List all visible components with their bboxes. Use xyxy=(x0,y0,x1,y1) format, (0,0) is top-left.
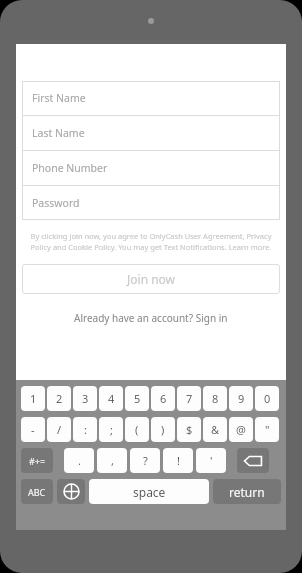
staticText: ; xyxy=(110,422,113,437)
staticText: $ xyxy=(186,422,193,437)
button[interactable]: 1 xyxy=(21,386,45,411)
staticText: First Name xyxy=(32,91,86,105)
button[interactable]: Change language xyxy=(57,479,85,504)
staticText: & xyxy=(211,422,220,437)
button[interactable]: & xyxy=(203,417,227,442)
button[interactable]: return xyxy=(213,479,281,504)
staticText: ! xyxy=(177,453,180,468)
button[interactable]: 5 xyxy=(125,386,149,411)
button[interactable]: - xyxy=(21,417,45,442)
staticText: Join now xyxy=(127,271,176,287)
staticText: ( xyxy=(135,422,139,437)
staticText: space xyxy=(133,484,166,500)
staticText: Phone Number xyxy=(32,161,108,175)
button[interactable]: 4 xyxy=(99,386,123,411)
button[interactable]: " xyxy=(255,417,279,442)
button[interactable]: 8 xyxy=(203,386,227,411)
button[interactable]: Already have an account? Sign in xyxy=(16,308,286,328)
staticText: Last Name xyxy=(32,126,85,140)
staticText: ' xyxy=(210,453,213,468)
staticText: 9 xyxy=(238,391,245,406)
button[interactable]: ) xyxy=(151,417,175,442)
button[interactable]: ABC xyxy=(21,479,53,504)
staticText: / xyxy=(57,422,62,437)
staticText: ) xyxy=(161,422,165,437)
button[interactable]: ? xyxy=(130,448,160,473)
button[interactable]: . xyxy=(64,448,94,473)
button[interactable]: 7 xyxy=(177,386,201,411)
button[interactable]: ' xyxy=(196,448,226,473)
button[interactable]: 0 xyxy=(255,386,279,411)
staticText: , xyxy=(111,453,114,468)
button[interactable]: 2 xyxy=(47,386,71,411)
button[interactable]: ! xyxy=(163,448,193,473)
staticText: 8 xyxy=(212,391,219,406)
staticText: 2 xyxy=(56,391,63,406)
staticText: Already have an account? Sign in xyxy=(74,311,228,325)
button[interactable]: , xyxy=(97,448,127,473)
staticText: #+= xyxy=(29,455,46,467)
staticText: ABC xyxy=(28,486,46,498)
button[interactable]: Phone Number xyxy=(22,151,280,186)
button[interactable]: 3 xyxy=(73,386,97,411)
staticText: . xyxy=(78,453,81,468)
staticText: " xyxy=(265,422,270,437)
button[interactable]: #+= xyxy=(21,448,53,473)
staticText: By clicking Join now, you agree to OnlyC… xyxy=(24,231,278,252)
button[interactable]: First Name xyxy=(22,81,280,116)
staticText: ? xyxy=(143,453,148,468)
staticText: 0 xyxy=(264,391,271,406)
button[interactable]: $ xyxy=(177,417,201,442)
button[interactable]: 9 xyxy=(229,386,253,411)
button[interactable]: / xyxy=(47,417,71,442)
button[interactable]: Join now xyxy=(22,264,280,294)
staticText: 6 xyxy=(160,391,167,406)
button[interactable]: : xyxy=(73,417,97,442)
button[interactable]: Backspace xyxy=(237,448,269,473)
button[interactable]: ; xyxy=(99,417,123,442)
staticText: - xyxy=(31,422,35,437)
staticText: 3 xyxy=(82,391,89,406)
staticText: 5 xyxy=(134,391,141,406)
staticText: return xyxy=(229,484,265,500)
staticText: 4 xyxy=(108,391,115,406)
staticText: @ xyxy=(236,422,246,437)
staticText: : xyxy=(84,422,87,437)
button[interactable]: ( xyxy=(125,417,149,442)
staticText: 7 xyxy=(186,391,193,406)
button[interactable]: Last Name xyxy=(22,116,280,151)
staticText: Password xyxy=(32,196,80,210)
button[interactable]: Password xyxy=(22,186,280,220)
staticText: 1 xyxy=(30,391,37,406)
button[interactable]: @ xyxy=(229,417,253,442)
button[interactable]: 6 xyxy=(151,386,175,411)
button[interactable]: space xyxy=(89,479,209,504)
